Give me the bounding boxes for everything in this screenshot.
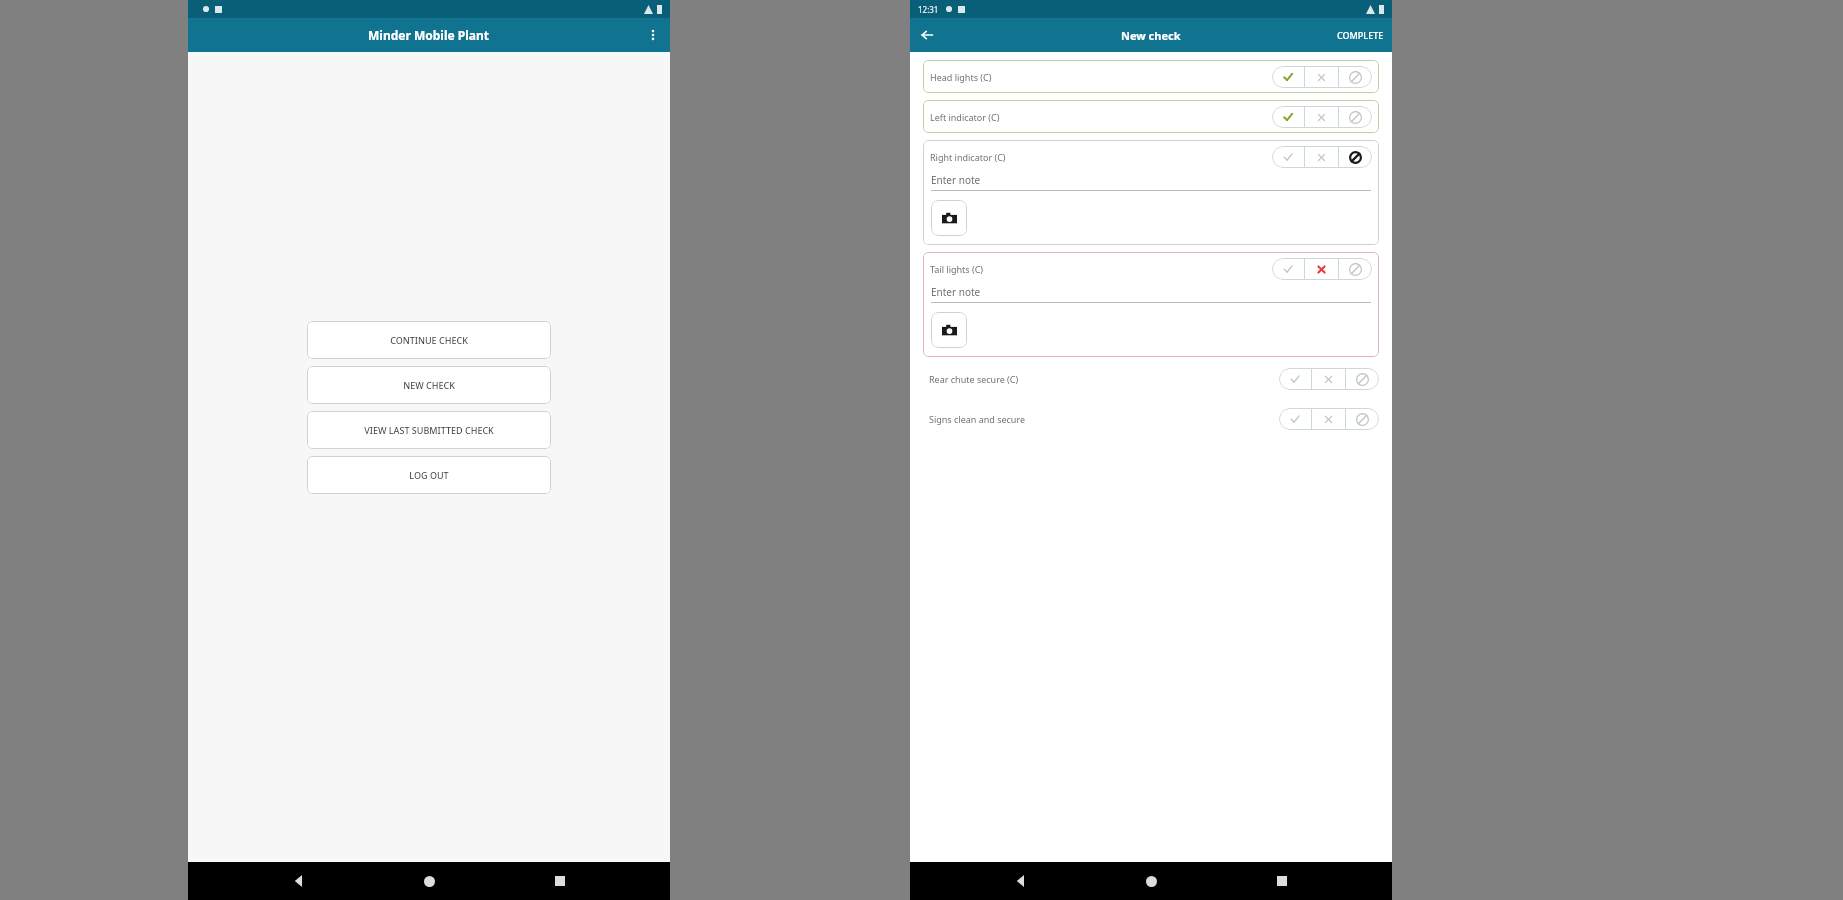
button[interactable]: NEW CHECK <box>307 366 551 404</box>
button[interactable]: Pass <box>1272 106 1304 128</box>
button[interactable]: Right indicator (C) <box>923 140 1379 245</box>
button[interactable]: Not applicable <box>1339 258 1372 280</box>
button[interactable]: Fail <box>1312 368 1345 390</box>
button[interactable]: Rear chute secure (C) <box>923 364 1379 394</box>
button[interactable]: Fail <box>1305 66 1338 88</box>
button[interactable]: Pass <box>1279 408 1311 430</box>
staticText: 12:31 <box>918 4 939 15</box>
staticText: Rear chute secure (C) <box>929 373 1279 385</box>
button[interactable]: Pass <box>1272 146 1304 168</box>
staticText: Enter note <box>931 285 981 299</box>
button[interactable]: Signs clean and secure <box>923 404 1379 434</box>
button[interactable]: Pass <box>1272 66 1304 88</box>
button[interactable]: CONTINUE CHECK <box>307 321 551 359</box>
button[interactable]: More options <box>636 18 670 52</box>
staticText: CONTINUE CHECK <box>390 334 468 346</box>
staticText: LOG OUT <box>409 469 449 481</box>
button[interactable]: COMPLETE <box>1337 29 1384 41</box>
button[interactable]: Tail lights (C) <box>923 252 1379 357</box>
button[interactable]: Pass <box>1272 258 1304 280</box>
button[interactable]: Fail <box>1305 258 1338 280</box>
staticText: Left indicator (C) <box>930 111 1272 123</box>
button[interactable]: Fail <box>1312 408 1345 430</box>
button[interactable]: Fail <box>1305 146 1338 168</box>
staticText: NEW CHECK <box>403 379 455 391</box>
button[interactable]: Back <box>1001 862 1041 900</box>
button[interactable]: Not applicable <box>1339 106 1372 128</box>
button[interactable]: Pass <box>1279 368 1311 390</box>
staticText: Tail lights (C) <box>930 263 1272 275</box>
staticText: New check <box>1121 28 1181 43</box>
button[interactable]: Not applicable <box>1339 146 1372 168</box>
staticText: Right indicator (C) <box>930 151 1272 163</box>
button[interactable]: Recents <box>1262 862 1302 900</box>
button[interactable]: VIEW LAST SUBMITTED CHECK <box>307 411 551 449</box>
button[interactable]: Home <box>409 862 449 900</box>
button[interactable]: Back <box>910 18 944 52</box>
staticText: VIEW LAST SUBMITTED CHECK <box>364 424 494 436</box>
button[interactable]: Take photo <box>931 200 967 236</box>
button[interactable]: Fail <box>1305 106 1338 128</box>
button[interactable]: Not applicable <box>1339 66 1372 88</box>
button[interactable]: Home <box>1131 862 1171 900</box>
staticText: Enter note <box>931 173 981 187</box>
staticText: Minder Mobile Plant <box>368 27 490 43</box>
staticText: Head lights (C) <box>930 71 1272 83</box>
button[interactable]: Not applicable <box>1346 368 1379 390</box>
button[interactable]: LOG OUT <box>307 456 551 494</box>
button[interactable]: Left indicator (C) <box>923 100 1379 133</box>
button[interactable]: Not applicable <box>1346 408 1379 430</box>
staticText: Signs clean and secure <box>929 413 1279 425</box>
button[interactable]: Recents <box>540 862 580 900</box>
button[interactable]: Take photo <box>931 312 967 348</box>
button[interactable]: Back <box>279 862 319 900</box>
button[interactable]: Head lights (C) <box>923 60 1379 93</box>
staticText: COMPLETE <box>1337 29 1384 41</box>
